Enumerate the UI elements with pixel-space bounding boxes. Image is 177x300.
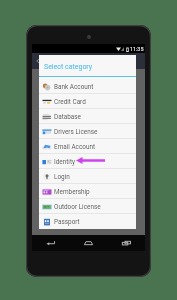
- button[interactable]: Home: [69, 235, 107, 251]
- staticText: Membership: [54, 188, 90, 196]
- button[interactable]: Email Account: [39, 139, 136, 154]
- staticText: Identity: [54, 158, 76, 166]
- button[interactable]: Outdoor License: [39, 199, 136, 214]
- button[interactable]: Login: [39, 169, 136, 184]
- staticText: Select category: [44, 63, 93, 71]
- staticText: Credit Card: [54, 98, 86, 106]
- staticText: 11:35: [130, 46, 144, 52]
- staticText: Outdoor License: [54, 203, 101, 211]
- staticText: Bank Account: [54, 83, 94, 91]
- button[interactable]: Credit Card: [39, 94, 136, 109]
- button[interactable]: Database: [39, 109, 136, 124]
- button[interactable]: Passport: [39, 214, 136, 229]
- staticText: Login: [54, 173, 70, 181]
- button[interactable]: Recent apps: [107, 235, 145, 251]
- button[interactable]: Identity: [39, 154, 136, 169]
- staticText: Passport: [54, 218, 80, 226]
- staticText: Email Account: [54, 143, 96, 151]
- staticText: Database: [54, 113, 81, 121]
- staticText: Drivers License: [54, 128, 98, 136]
- button[interactable]: Bank Account: [39, 79, 136, 94]
- button[interactable]: Back: [32, 235, 69, 251]
- button[interactable]: Drivers License: [39, 124, 136, 139]
- button[interactable]: Membership: [39, 184, 136, 199]
- other: Back: [36, 59, 40, 63]
